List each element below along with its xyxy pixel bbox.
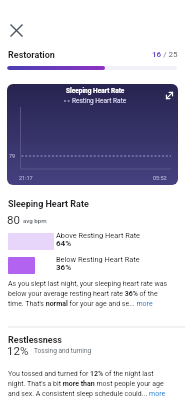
staticText: As you slept last night, your sleeping h…: [8, 280, 169, 307]
staticText: Above Resting Heart Rate: [56, 231, 141, 240]
staticText: Below Resting Heart Rate: [56, 255, 140, 264]
staticText: Tossing and turning: [34, 347, 92, 355]
staticText: 64%: [56, 239, 72, 248]
button[interactable]: Close: [4, 18, 28, 42]
staticText: 79: [9, 153, 16, 159]
staticText: avg bpm: [23, 217, 47, 224]
staticText: 16 / 25: [152, 50, 178, 59]
button[interactable]: Expand chart: [159, 85, 178, 105]
staticText: Resting Heart Rate: [72, 97, 127, 105]
staticText: You tossed and turned for 12% of the nig…: [8, 370, 169, 397]
button[interactable]: Sleeping Heart Rate: [7, 84, 178, 185]
staticText: 05:52: [153, 175, 167, 181]
staticText: Sleeping Heart Rate: [8, 199, 89, 210]
staticText: Sleeping Heart Rate: [66, 87, 125, 95]
staticText: 21:17: [19, 175, 33, 181]
staticText: 36%: [56, 263, 72, 272]
staticText: 80: [7, 213, 20, 226]
staticText: 12%: [7, 344, 29, 357]
staticText: Restlessness: [8, 335, 62, 346]
staticText: Restoration: [8, 50, 55, 61]
